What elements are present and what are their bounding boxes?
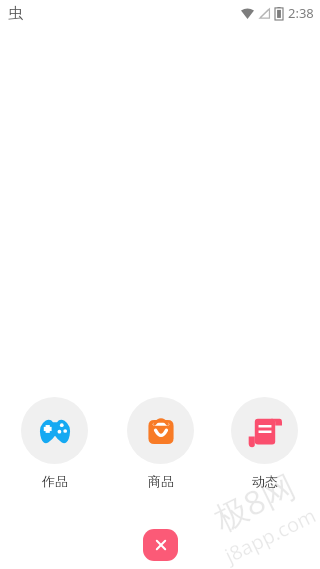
staticText: 商品 <box>148 473 174 489</box>
button[interactable]: Works <box>21 397 88 489</box>
staticText: j8app.com <box>220 501 320 569</box>
button[interactable]: Goods <box>127 397 194 489</box>
button[interactable]: Close <box>143 529 178 561</box>
staticText: 极8网 <box>206 463 302 541</box>
button[interactable]: Feed <box>231 397 298 489</box>
staticText: 作品 <box>42 473 68 489</box>
staticText: 虫 <box>8 4 23 22</box>
staticText: 动态 <box>252 473 278 489</box>
staticText: 2:38 <box>288 4 314 22</box>
